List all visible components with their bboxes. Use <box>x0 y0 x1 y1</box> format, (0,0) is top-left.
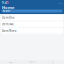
staticText: Home <box>9 61 13 63</box>
staticText: Me <box>52 61 54 63</box>
staticText: Item Three <box>2 29 17 33</box>
staticText: Item Two <box>2 22 14 26</box>
staticText: Item One <box>2 16 15 19</box>
staticText: Search <box>2 9 10 13</box>
button[interactable]: Search <box>21 60 43 64</box>
button[interactable]: Item Three <box>1 28 63 34</box>
staticText: 9:41 <box>2 1 9 5</box>
staticText: Home <box>2 5 14 10</box>
button[interactable]: Item Two <box>1 21 63 27</box>
staticText: ... <box>59 1 62 5</box>
button[interactable]: Home <box>0 60 21 64</box>
button[interactable]: Item One <box>1 15 63 20</box>
